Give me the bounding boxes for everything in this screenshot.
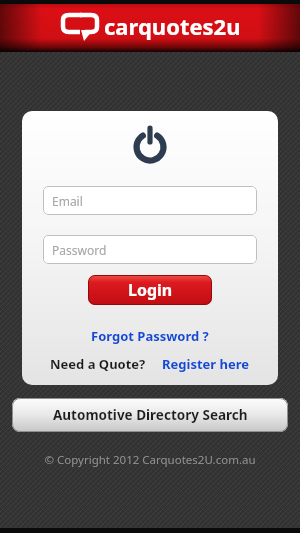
- staticText: Email: [52, 193, 83, 209]
- staticText: © Copyright 2012 Carquotes2U.com.au: [0, 452, 300, 468]
- staticText: Automotive Directory Search: [53, 406, 248, 424]
- button[interactable]: Password: [43, 235, 257, 264]
- button[interactable]: Automotive Directory Search: [12, 398, 288, 432]
- staticText: Login: [128, 279, 173, 301]
- button[interactable]: Email: [43, 186, 257, 215]
- staticText: Password: [52, 242, 107, 258]
- button[interactable]: Login: [88, 275, 212, 305]
- staticText: Need a Quote?: [50, 355, 146, 373]
- staticText: carquotes2u: [104, 11, 241, 41]
- button[interactable]: Register here: [162, 355, 250, 373]
- button[interactable]: Forgot Password ?: [91, 327, 209, 345]
